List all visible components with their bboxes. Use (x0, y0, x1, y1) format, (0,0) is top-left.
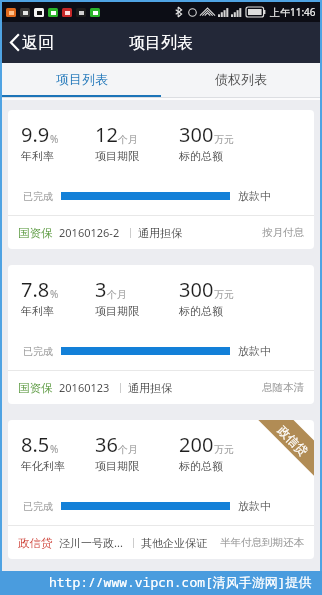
staticText: 20160126-2 (59, 225, 120, 240)
staticText: 项目期限 (95, 149, 139, 163)
button[interactable]: 返回 (2, 22, 64, 63)
button[interactable]: 项目列表 (2, 63, 161, 98)
staticText: 年化利率 (21, 459, 65, 473)
staticText: 年利率 (21, 304, 54, 318)
staticText: 息随本清 (262, 381, 304, 394)
staticText: 按月付息 (262, 226, 304, 239)
staticText: 放款中 (238, 499, 271, 513)
staticText: 通用担保 (138, 226, 182, 240)
staticText: 通用担保 (128, 381, 172, 395)
staticText: 300 (179, 121, 214, 148)
staticText: 国资保 (18, 381, 53, 395)
staticText: 7.8 (21, 276, 50, 303)
staticText: 12 (95, 121, 118, 148)
staticText: 项目期限 (95, 459, 139, 473)
staticText: 年利率 (21, 149, 54, 163)
staticText: 个月 (118, 443, 138, 456)
staticText: 项目列表 (129, 33, 193, 53)
staticText: 返回 (22, 33, 54, 53)
staticText: % (50, 287, 59, 301)
staticText: 个月 (107, 288, 127, 301)
button[interactable]: 9.9 (8, 110, 314, 249)
staticText: 项目期限 (95, 304, 139, 318)
staticText: 已完成 (23, 500, 53, 513)
staticText: 万元 (214, 443, 234, 456)
staticText: 36 (95, 431, 118, 458)
staticText: 200 (179, 431, 214, 458)
staticText: 8.5 (21, 431, 50, 458)
staticText: 债权列表 (215, 71, 267, 87)
staticText: % (50, 132, 59, 146)
staticText: http://www.vipcn.com[清风手游网]提供 (49, 573, 312, 591)
staticText: 其他企业保证 (141, 536, 207, 550)
staticText: 9.9 (21, 121, 50, 148)
staticText: 半年付息到期还本 (220, 536, 304, 549)
staticText: % (50, 442, 59, 456)
button[interactable]: 8.5 (8, 420, 314, 559)
staticText: 标的总额 (179, 459, 223, 473)
staticText: 项目列表 (56, 71, 108, 87)
staticText: 放款中 (238, 344, 271, 358)
staticText: 标的总额 (179, 149, 223, 163)
staticText: 政信贷 (18, 536, 53, 550)
staticText: 万元 (214, 133, 234, 146)
staticText: 上午11:46 (270, 5, 316, 19)
staticText: 300 (179, 276, 214, 303)
staticText: 已完成 (23, 345, 53, 358)
staticText: 国资保 (18, 226, 53, 240)
staticText: 个月 (118, 133, 138, 146)
staticText: 泾川一号政... (59, 535, 123, 550)
staticText: 标的总额 (179, 304, 223, 318)
button[interactable]: 债权列表 (161, 63, 320, 98)
button[interactable]: 7.8 (8, 265, 314, 404)
staticText: 政信贷 (275, 422, 311, 459)
staticText: 万元 (214, 288, 234, 301)
staticText: 已完成 (23, 190, 53, 203)
staticText: 3 (95, 276, 107, 303)
staticText: 放款中 (238, 189, 271, 203)
staticText: 20160123 (59, 380, 110, 395)
